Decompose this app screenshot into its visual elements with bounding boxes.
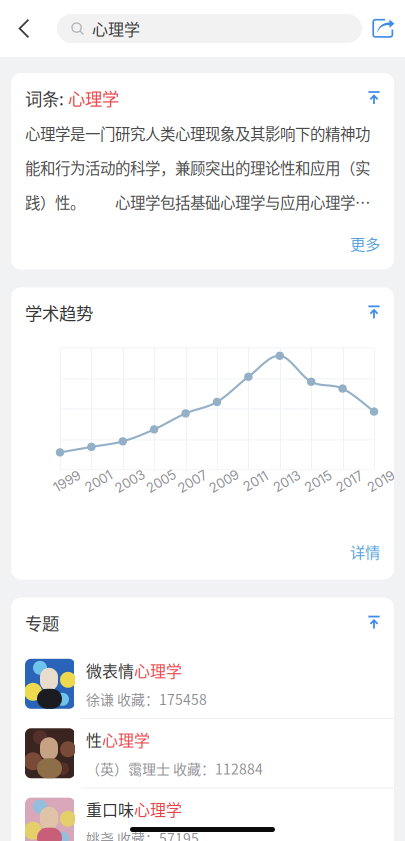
staticText: 2017 bbox=[335, 473, 364, 489]
button[interactable]: 重口味 bbox=[11, 788, 394, 841]
button[interactable]: 性 bbox=[11, 719, 394, 787]
button[interactable]: 收起 bbox=[360, 610, 388, 636]
staticText: 2009 bbox=[208, 473, 240, 489]
button[interactable]: 更多 bbox=[336, 227, 394, 259]
button[interactable]: 心理学 bbox=[57, 14, 362, 43]
staticText: 详情 bbox=[350, 540, 380, 563]
staticText: 1999 bbox=[52, 473, 81, 489]
staticText: （英）霭理士 收藏：112884 bbox=[86, 758, 263, 778]
button[interactable]: 微表情 bbox=[11, 650, 394, 718]
staticText: 重口味 bbox=[86, 797, 134, 821]
staticText: 心理学 bbox=[68, 85, 119, 111]
staticText: 2007 bbox=[177, 473, 209, 489]
staticText: 心理学 bbox=[92, 17, 140, 40]
button[interactable]: 收起 bbox=[360, 85, 388, 111]
staticText: 更多 bbox=[350, 232, 380, 254]
button[interactable]: 分享 bbox=[362, 4, 405, 52]
staticText: 2019 bbox=[366, 473, 395, 489]
staticText: 姚尧 收藏：57195 bbox=[86, 828, 199, 841]
staticText: 2013 bbox=[272, 473, 301, 489]
staticText: 学术趋势 bbox=[25, 300, 93, 325]
staticText: 2003 bbox=[114, 473, 146, 489]
staticText: 专题 bbox=[25, 610, 59, 635]
staticText: 心理学 bbox=[134, 659, 182, 682]
staticText: 2001 bbox=[84, 473, 113, 489]
staticText: 2015 bbox=[304, 473, 333, 489]
staticText: 微表情 bbox=[86, 659, 134, 682]
staticText: 2011 bbox=[242, 473, 268, 489]
staticText: 心理学是一门研究人类心理现象及其影响下的精神功能和行为活动的科学，兼顾突出的理论… bbox=[25, 122, 370, 213]
staticText: 徐谦 收藏：175458 bbox=[86, 689, 207, 709]
button[interactable]: 详情 bbox=[336, 535, 394, 568]
staticText: 性 bbox=[86, 728, 102, 751]
staticText: 词条: bbox=[25, 85, 68, 111]
staticText: 心理学 bbox=[134, 797, 182, 821]
button[interactable]: 返回 bbox=[0, 4, 48, 52]
button[interactable]: 收起 bbox=[360, 299, 388, 325]
staticText: 2005 bbox=[145, 473, 177, 489]
staticText: 心理学 bbox=[102, 728, 150, 751]
